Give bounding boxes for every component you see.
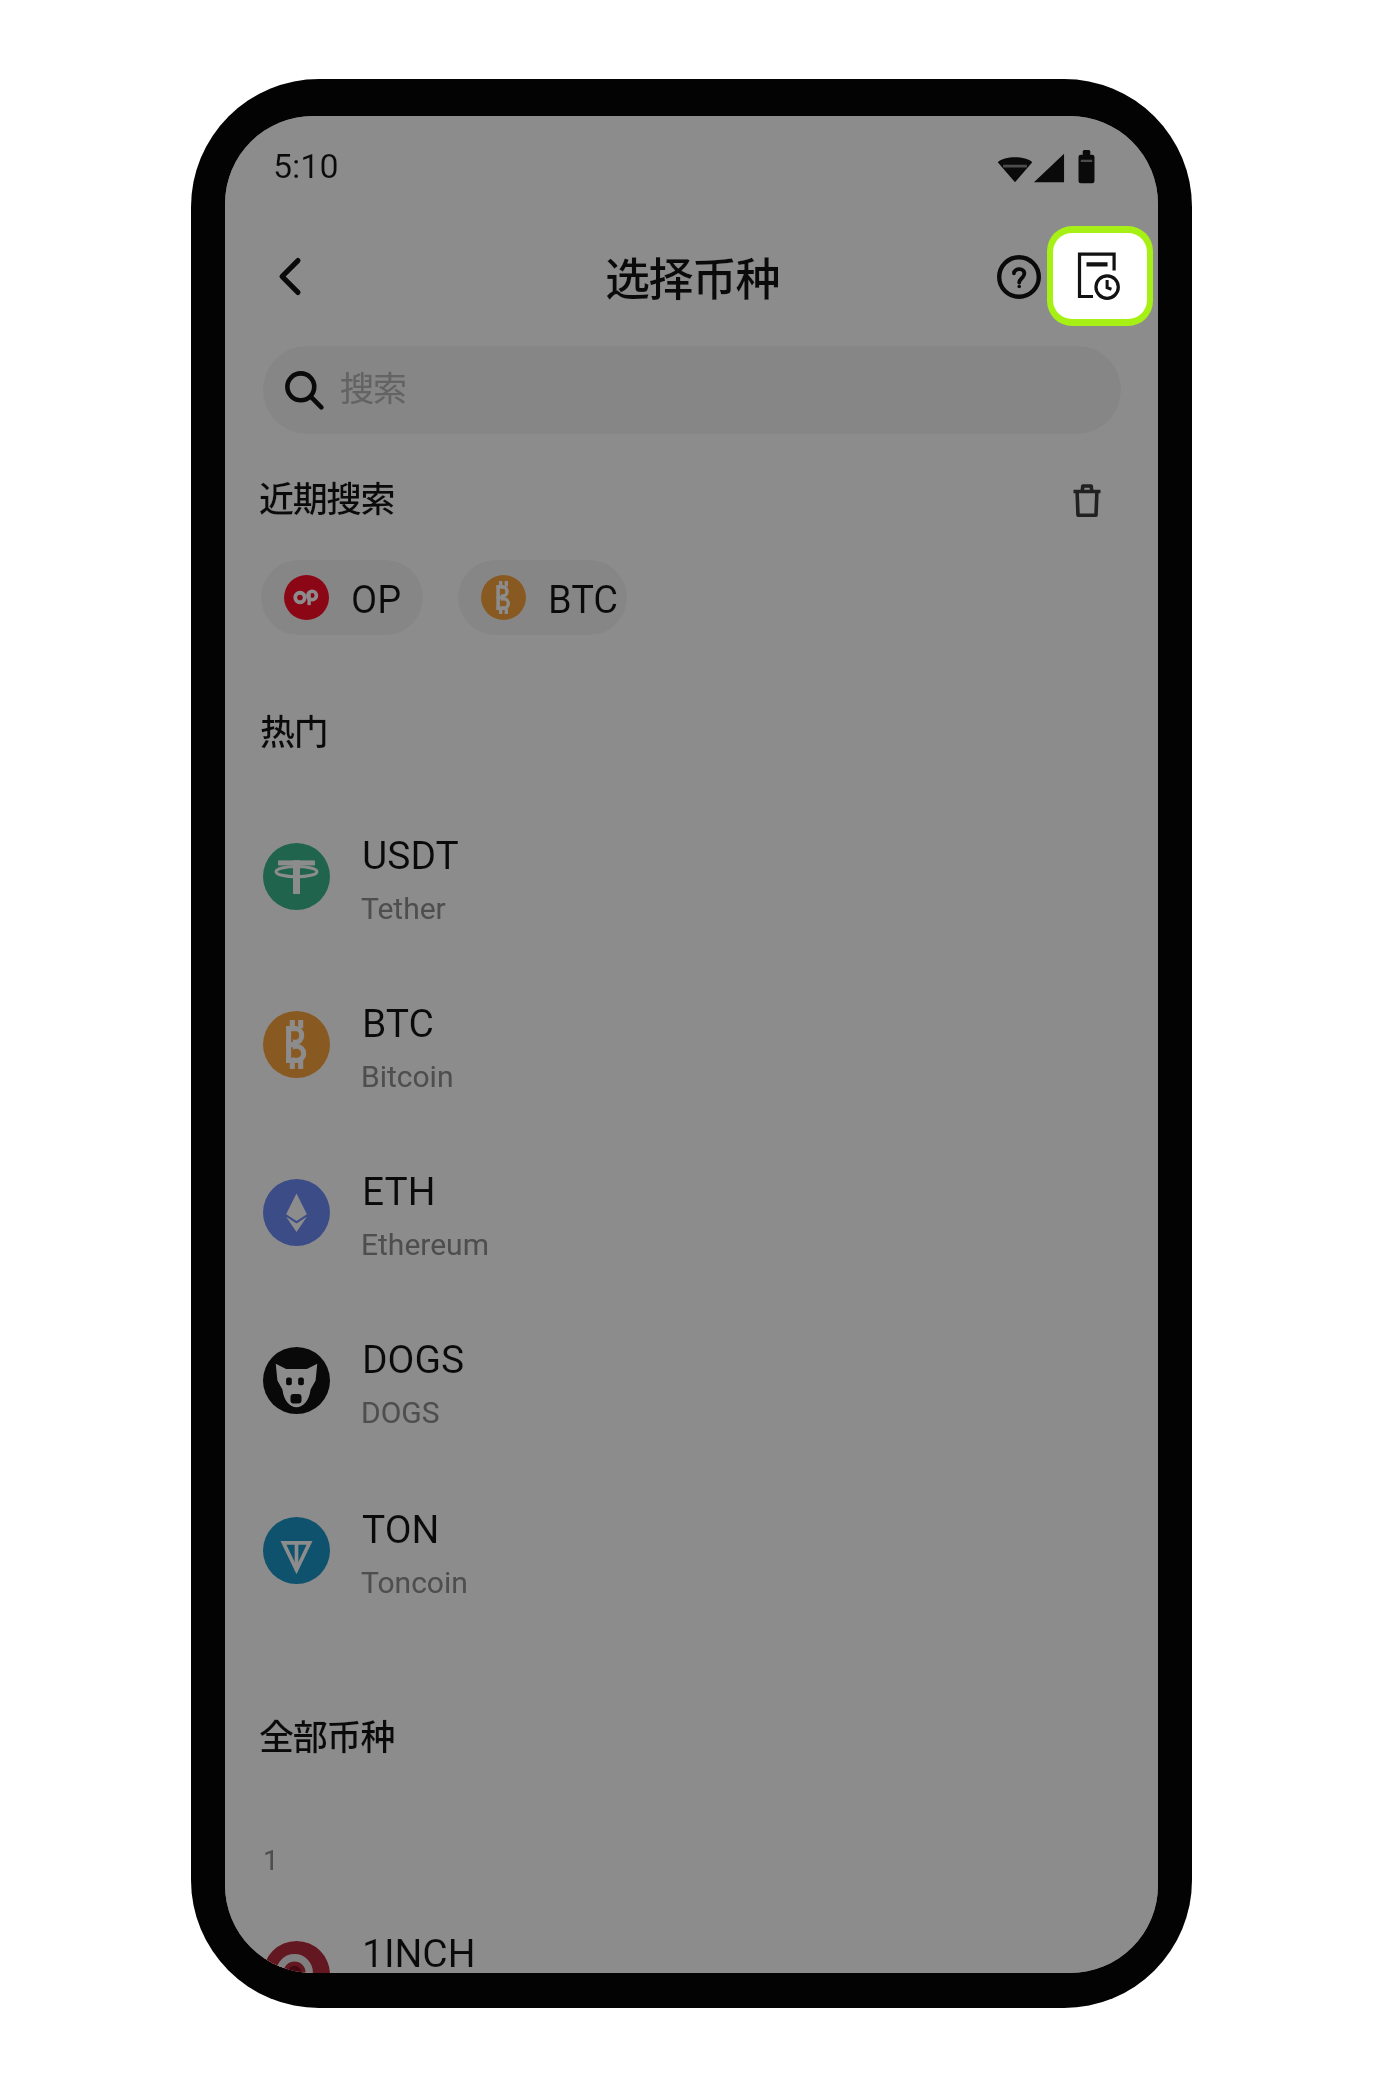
staticText: 搜索 bbox=[340, 362, 406, 411]
button[interactable]: BTC bbox=[225, 961, 1158, 1129]
button[interactable]: USDT bbox=[225, 793, 1158, 961]
staticText: OP bbox=[351, 578, 402, 623]
staticText: 全部币种 bbox=[259, 1709, 395, 1760]
button[interactable]: ETH bbox=[225, 1129, 1158, 1297]
button[interactable]: Clear recent searches bbox=[1057, 471, 1117, 531]
staticText: 近期搜索 bbox=[259, 471, 395, 522]
staticText: BTC bbox=[362, 1001, 434, 1047]
button[interactable]: 1INCH bbox=[225, 1891, 1158, 1973]
button[interactable]: Back bbox=[246, 232, 334, 320]
staticText: DOGS bbox=[362, 1337, 465, 1383]
staticText: 选择币种 bbox=[605, 244, 780, 309]
staticText: 热门 bbox=[260, 704, 328, 755]
staticText: DOGS bbox=[361, 1395, 440, 1430]
button[interactable]: BTC bbox=[458, 560, 627, 635]
button[interactable]: Order history bbox=[1047, 226, 1153, 326]
staticText: USDT bbox=[362, 833, 459, 879]
staticText: BTC bbox=[548, 578, 619, 623]
staticText: Toncoin bbox=[361, 1565, 468, 1600]
staticText: 1INCH bbox=[362, 1931, 476, 1973]
button[interactable]: DOGS bbox=[225, 1297, 1158, 1465]
staticText: Tether bbox=[361, 891, 446, 926]
button[interactable]: TON bbox=[225, 1467, 1158, 1635]
button[interactable]: Help bbox=[975, 233, 1063, 321]
staticText: Ethereum bbox=[361, 1227, 489, 1262]
staticText: 1 bbox=[263, 1844, 279, 1877]
staticText: Bitcoin bbox=[361, 1059, 454, 1094]
button[interactable]: OP bbox=[261, 560, 423, 635]
staticText: 5:10 bbox=[273, 146, 339, 186]
staticText: ETH bbox=[362, 1169, 436, 1215]
button[interactable]: Search bbox=[263, 346, 1121, 434]
staticText: TON bbox=[362, 1507, 440, 1553]
